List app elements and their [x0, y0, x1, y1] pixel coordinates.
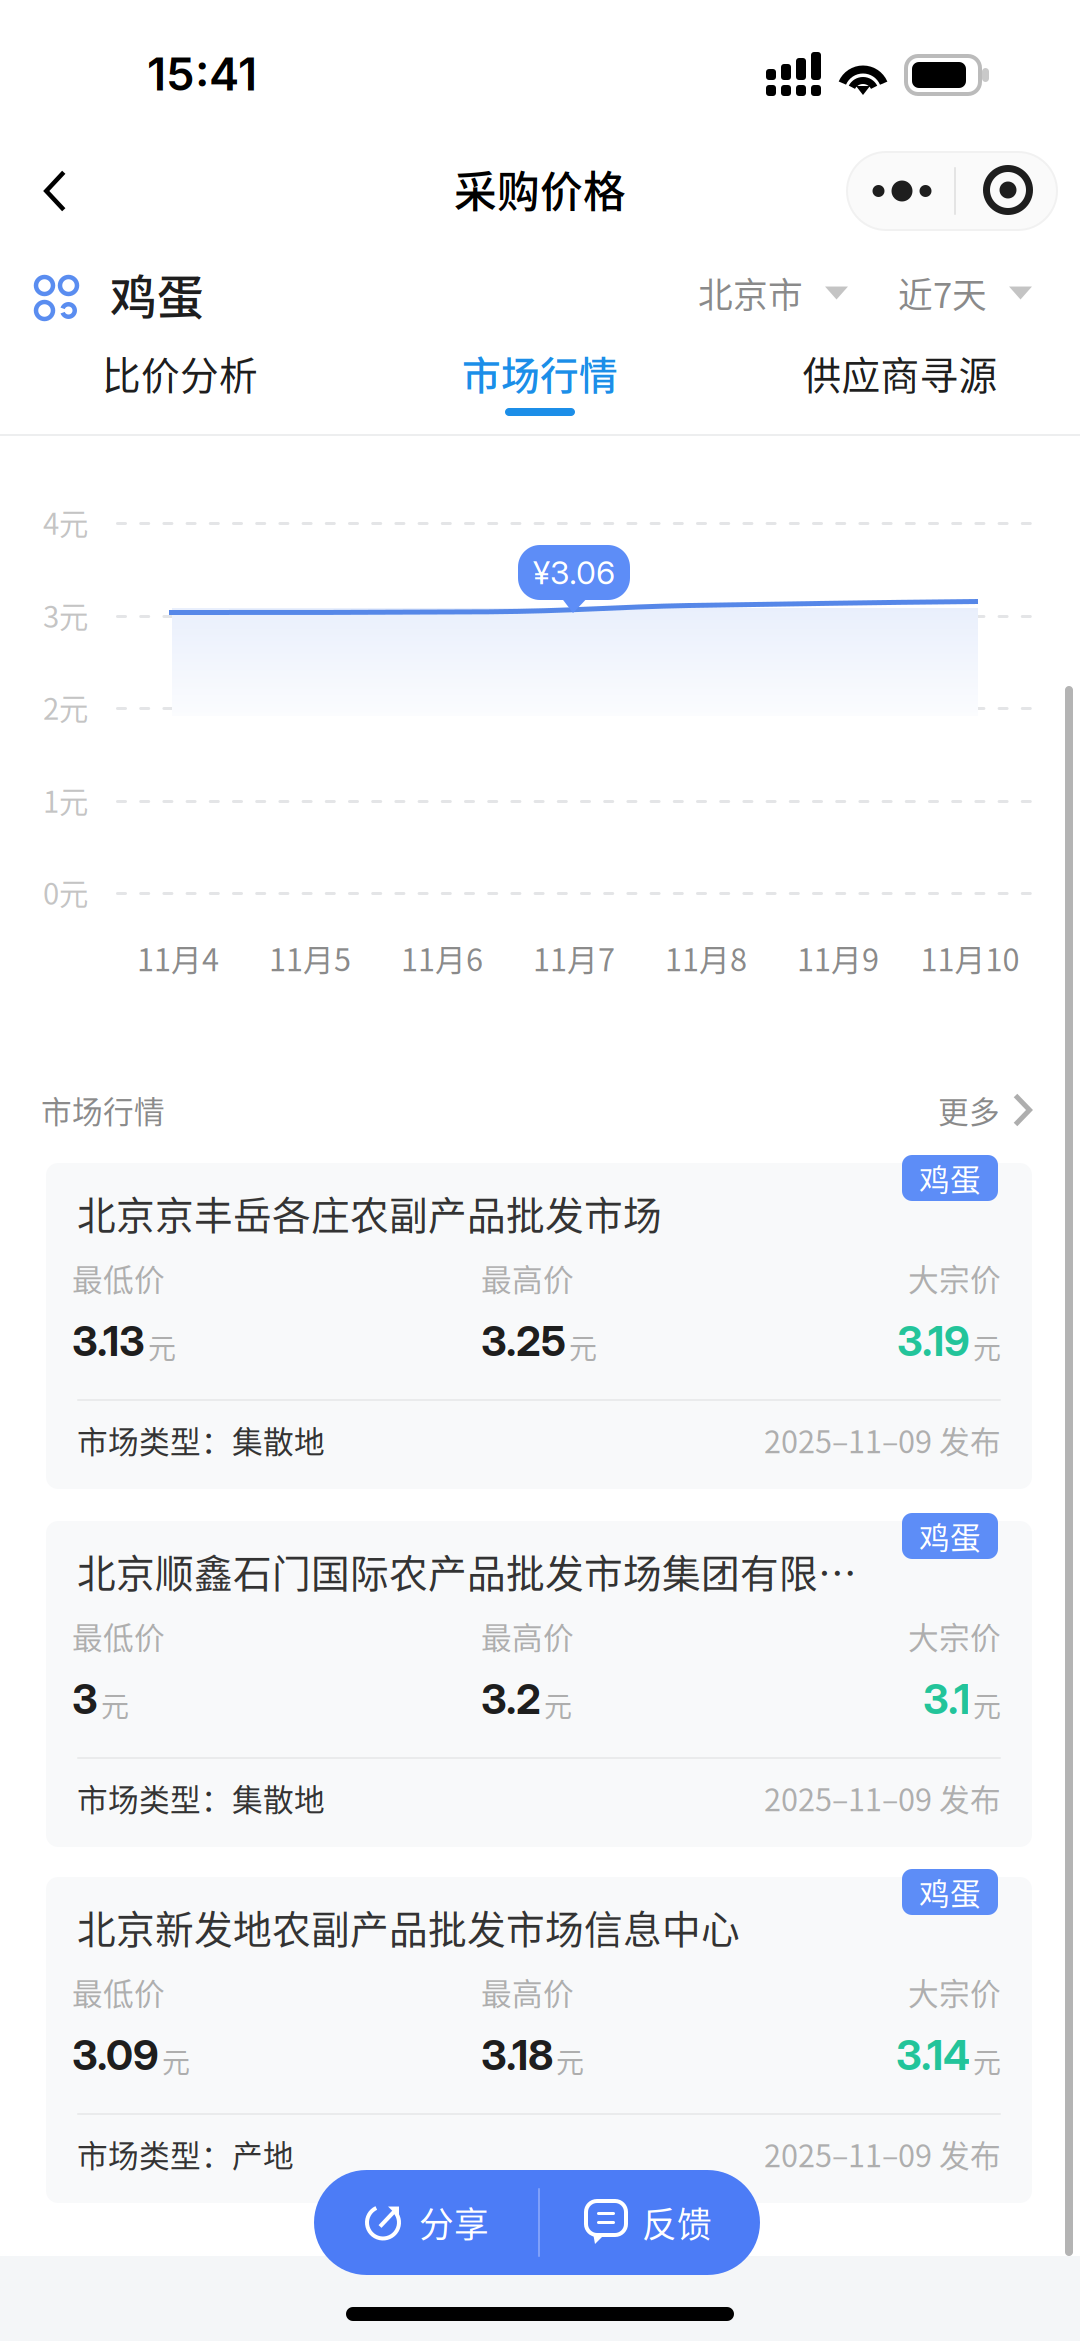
- staticText: 最高价: [481, 1256, 574, 1300]
- button[interactable]: 分享: [314, 2170, 538, 2275]
- staticText: 0元: [43, 871, 88, 913]
- staticText: 元: [973, 1684, 1001, 1725]
- staticText: 元: [556, 2040, 584, 2081]
- button[interactable]: 北京顺鑫石门国际农产品批发市场集团有限…: [46, 1521, 1032, 1847]
- staticText: 元: [973, 2040, 1001, 2081]
- staticText: 3.13: [72, 1316, 145, 1366]
- staticText: 近7天: [898, 268, 987, 318]
- staticText: 11月4: [137, 936, 219, 980]
- staticText: 元: [101, 1684, 129, 1725]
- staticText: 北京市: [698, 268, 803, 318]
- staticText: 11月5: [269, 936, 351, 980]
- staticText: 最低价: [72, 1970, 165, 2014]
- staticText: 北京新发地农副产品批发市场信息中心: [77, 1899, 740, 1955]
- staticText: 北京顺鑫石门国际农产品批发市场集团有限…: [77, 1543, 857, 1599]
- staticText: 市场行情: [462, 345, 618, 401]
- staticText: 元: [569, 1326, 597, 1367]
- staticText: 3.2: [481, 1674, 541, 1724]
- staticText: 11月7: [533, 936, 615, 980]
- staticText: 市场类型：集散地: [77, 1418, 325, 1462]
- staticText: 2025–11–09 发布: [764, 1418, 1001, 1462]
- staticText: 最高价: [481, 1614, 574, 1658]
- staticText: 3.18: [481, 2030, 553, 2080]
- staticText: 元: [544, 1684, 572, 1725]
- staticText: 2025–11–09 发布: [764, 2132, 1001, 2176]
- staticText: 2元: [43, 686, 88, 728]
- staticText: 鸡蛋: [919, 1870, 981, 1914]
- staticText: 4元: [43, 501, 88, 543]
- staticText: 市场类型：产地: [77, 2132, 294, 2176]
- button[interactable]: 反馈: [538, 2170, 760, 2275]
- staticText: 大宗价: [908, 1256, 1001, 1300]
- staticText: 市场类型：集散地: [77, 1776, 325, 1820]
- staticText: 2025–11–09 发布: [764, 1776, 1001, 1820]
- button[interactable]: More options: [0, 140, 210, 218]
- staticText: 比价分析: [102, 345, 258, 401]
- staticText: 鸡蛋: [110, 260, 204, 328]
- button[interactable]: 近7天: [0, 250, 150, 300]
- button[interactable]: 比价分析: [0, 348, 360, 420]
- staticText: 元: [162, 2040, 190, 2081]
- staticText: 元: [148, 1326, 176, 1367]
- staticText: 大宗价: [908, 1970, 1001, 2014]
- staticText: 元: [973, 1326, 1001, 1367]
- staticText: 市场行情: [41, 1088, 165, 1132]
- staticText: 鸡蛋: [919, 1514, 981, 1558]
- button[interactable]: Back: [0, 140, 60, 190]
- staticText: 供应商寻源: [802, 345, 997, 401]
- staticText: ¥3.06: [533, 553, 615, 592]
- staticText: 大宗价: [908, 1614, 1001, 1658]
- staticText: 最高价: [481, 1970, 574, 2014]
- staticText: 11月9: [797, 936, 879, 980]
- staticText: 3: [72, 1674, 98, 1724]
- staticText: 反馈: [642, 2197, 712, 2248]
- staticText: 3.19: [897, 1316, 970, 1366]
- staticText: 最低价: [72, 1614, 165, 1658]
- staticText: 北京京丰岳各庄农副产品批发市场: [77, 1185, 662, 1241]
- staticText: 最低价: [72, 1256, 165, 1300]
- staticText: 3.09: [72, 2030, 159, 2080]
- staticText: 3元: [43, 594, 88, 636]
- staticText: 鸡蛋: [919, 1156, 981, 1200]
- staticText: 3.1: [923, 1674, 970, 1724]
- staticText: 3.14: [896, 2030, 970, 2080]
- staticText: 11月6: [401, 936, 483, 980]
- staticText: 11月10: [920, 936, 1019, 980]
- button[interactable]: 北京京丰岳各庄农副产品批发市场: [46, 1163, 1032, 1489]
- button[interactable]: 北京市: [0, 250, 150, 300]
- staticText: 15:41: [147, 47, 257, 101]
- staticText: 分享: [419, 2197, 489, 2248]
- button[interactable]: 市场行情: [360, 348, 720, 420]
- staticText: 采购价格: [454, 158, 626, 220]
- button[interactable]: 北京新发地农副产品批发市场信息中心: [46, 1877, 1032, 2203]
- staticText: 11月8: [665, 936, 747, 980]
- button[interactable]: 供应商寻源: [720, 348, 1080, 420]
- staticText: 更多: [938, 1088, 1000, 1132]
- staticText: 1元: [43, 779, 88, 821]
- staticText: 3.25: [481, 1316, 566, 1366]
